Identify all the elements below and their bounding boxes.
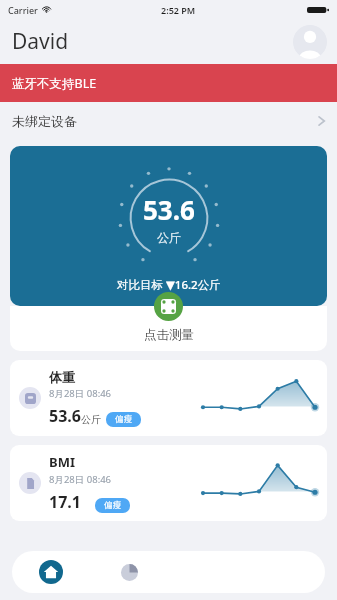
button[interactable]: 未绑定设备 (0, 102, 337, 139)
staticText: 53.6 (49, 405, 81, 427)
button[interactable]: BMI (10, 445, 327, 521)
staticText: 17.1 (49, 491, 81, 513)
staticText: 偏瘦 (115, 414, 132, 425)
staticText: 偏瘦 (104, 500, 121, 511)
staticText: 未绑定设备 (12, 113, 77, 129)
staticText: Carrier (8, 4, 38, 16)
button[interactable]: Profile (293, 25, 327, 59)
button[interactable]: 蓝牙不支持BLE (0, 64, 337, 102)
staticText: BMI (49, 453, 75, 471)
staticText: 点击测量 (144, 327, 194, 343)
button[interactable]: Measure (154, 292, 183, 321)
staticText: David (12, 27, 69, 56)
staticText: 公斤 (157, 230, 181, 245)
staticText: 对比目标 ▼16.2公斤 (117, 277, 221, 293)
staticText: 8月28日 08:46 (49, 387, 112, 400)
staticText: 2:52 PM (161, 4, 196, 16)
staticText: 蓝牙不支持BLE (12, 75, 97, 92)
button[interactable]: Home (12, 551, 90, 593)
staticText: 53.6 (143, 192, 195, 227)
staticText: 体重 (49, 369, 75, 385)
staticText: 8月28日 08:46 (49, 473, 112, 486)
staticText: 公斤 (81, 413, 101, 426)
button[interactable]: 体重 (10, 360, 327, 436)
button[interactable]: Statistics (90, 551, 168, 593)
